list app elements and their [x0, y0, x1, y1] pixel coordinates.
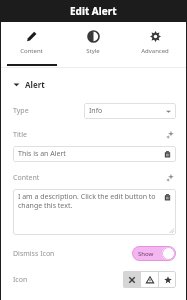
- button[interactable]: Info: [84, 103, 176, 119]
- staticText: Icon: [13, 275, 28, 285]
- button[interactable]: Content: [1, 22, 62, 66]
- staticText: Title: [13, 130, 27, 140]
- other: Edit content: [162, 192, 172, 202]
- staticText: I am a description. Click the edit butto…: [18, 192, 158, 210]
- staticText: Edit Alert: [70, 4, 117, 18]
- staticText: Type: [13, 106, 29, 116]
- button[interactable]: Style: [62, 22, 124, 66]
- button[interactable]: This is an Alert: [13, 146, 176, 162]
- button[interactable]: Star icon: [159, 271, 176, 288]
- button[interactable]: Alert icon: [141, 271, 158, 288]
- staticText: Info: [89, 106, 103, 116]
- staticText: Advanced: [141, 47, 169, 55]
- other: Edit content: [162, 149, 172, 159]
- staticText: Style: [86, 47, 100, 55]
- button[interactable]: Advanced: [124, 22, 186, 66]
- staticText: Content: [13, 173, 40, 183]
- button[interactable]: Alert: [13, 79, 176, 90]
- staticText: Show: [138, 250, 154, 258]
- button[interactable]: Dynamic tags: [164, 129, 176, 141]
- staticText: Content: [20, 47, 43, 55]
- button[interactable]: Dynamic tags: [164, 172, 176, 184]
- staticText: This is an Alert: [18, 149, 66, 159]
- button[interactable]: I am a description. Click the edit butto…: [13, 189, 176, 235]
- staticText: Dismiss Icon: [13, 249, 55, 259]
- staticText: Alert: [25, 79, 45, 90]
- button[interactable]: Show: [132, 246, 176, 261]
- button[interactable]: Close icon: [123, 271, 140, 288]
